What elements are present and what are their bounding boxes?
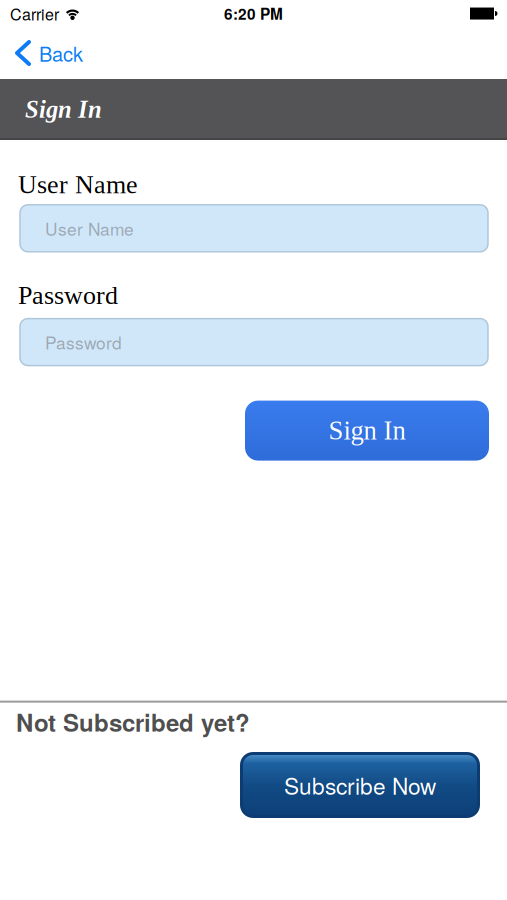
staticText: Sign In	[25, 96, 102, 123]
button[interactable]: Subscribe Now	[240, 752, 480, 818]
staticText: Password	[18, 281, 118, 310]
button[interactable]: Sign In	[245, 401, 489, 461]
staticText: Password	[45, 330, 122, 354]
staticText: User Name	[18, 170, 138, 199]
button[interactable]: Back	[0, 27, 93, 79]
staticText: Back	[39, 39, 83, 67]
staticText: Subscribe Now	[284, 769, 436, 801]
staticText: Sign In	[328, 416, 405, 445]
staticText: Carrier	[10, 2, 59, 25]
staticText: 6:20 PM	[224, 2, 283, 24]
staticText: User Name	[45, 216, 134, 241]
staticText: Not Subscribed yet?	[16, 705, 250, 739]
button[interactable]: Password	[0, 319, 507, 366]
button[interactable]: User Name	[0, 205, 507, 252]
